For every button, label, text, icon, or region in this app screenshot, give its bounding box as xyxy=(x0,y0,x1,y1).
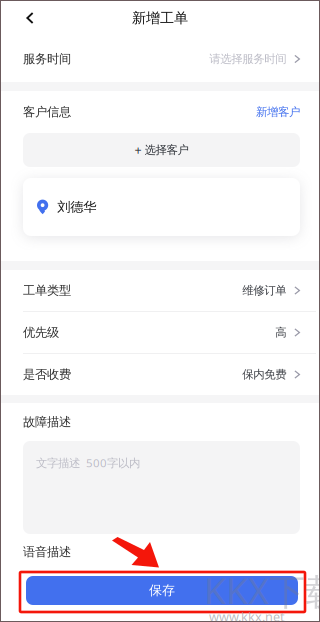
button[interactable]: 服务时间 xyxy=(0,36,320,82)
button[interactable]: 优先级 xyxy=(0,312,320,353)
button[interactable]: 工单类型 xyxy=(0,270,320,311)
staticText: KKX下载 xyxy=(204,566,320,615)
staticText: 客户信息 xyxy=(23,104,71,120)
button[interactable]: 保存 xyxy=(26,576,298,605)
staticText: 服务时间 xyxy=(23,51,71,67)
staticText: 新增客户 xyxy=(256,105,300,119)
staticText: www.kkx.net xyxy=(209,608,285,622)
staticText: 维修订单 xyxy=(242,283,286,298)
staticText: 语音描述 xyxy=(23,544,71,560)
staticText: + xyxy=(134,141,141,159)
button[interactable]: 文字描述 500字以内 xyxy=(23,441,300,534)
staticText: 工单类型 xyxy=(23,283,71,298)
staticText: 保内免费 xyxy=(242,367,286,382)
staticText: 文字描述 500字以内 xyxy=(36,455,140,471)
button[interactable]: Back xyxy=(0,0,53,36)
staticText: 故障描述 xyxy=(23,414,71,430)
button[interactable]: 新增客户 xyxy=(256,105,300,119)
button[interactable]: 是否收费 xyxy=(0,354,320,395)
staticText: 高 xyxy=(275,325,286,340)
staticText: 选择客户 xyxy=(144,143,188,157)
staticText: 新增工单 xyxy=(132,9,188,27)
staticText: 保存 xyxy=(149,582,175,599)
staticText: 刘德华 xyxy=(57,199,96,215)
staticText: 优先级 xyxy=(23,325,59,340)
button[interactable]: + xyxy=(23,133,300,167)
staticText: 请选择服务时间 xyxy=(209,52,286,66)
staticText: 是否收费 xyxy=(23,367,71,382)
button[interactable]: 刘德华 xyxy=(23,178,300,236)
